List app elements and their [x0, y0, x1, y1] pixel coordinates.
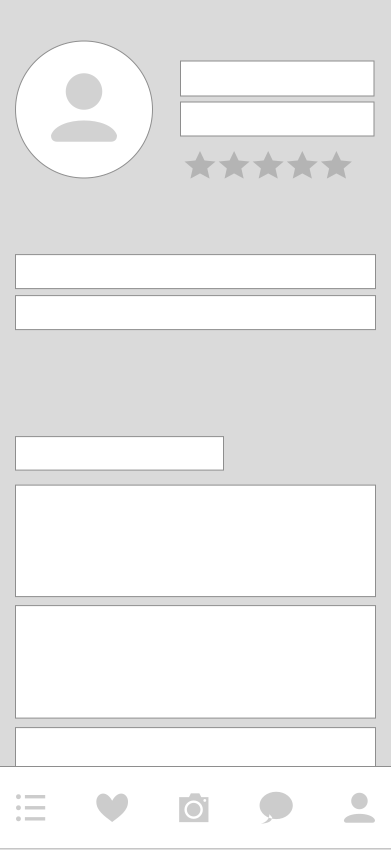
button[interactable]: Messages	[260, 766, 293, 849]
button[interactable]: Feed	[16, 766, 45, 849]
button[interactable]: Profile	[344, 766, 375, 849]
button[interactable]: Camera	[179, 766, 208, 849]
button[interactable]: Favourites	[96, 766, 128, 849]
